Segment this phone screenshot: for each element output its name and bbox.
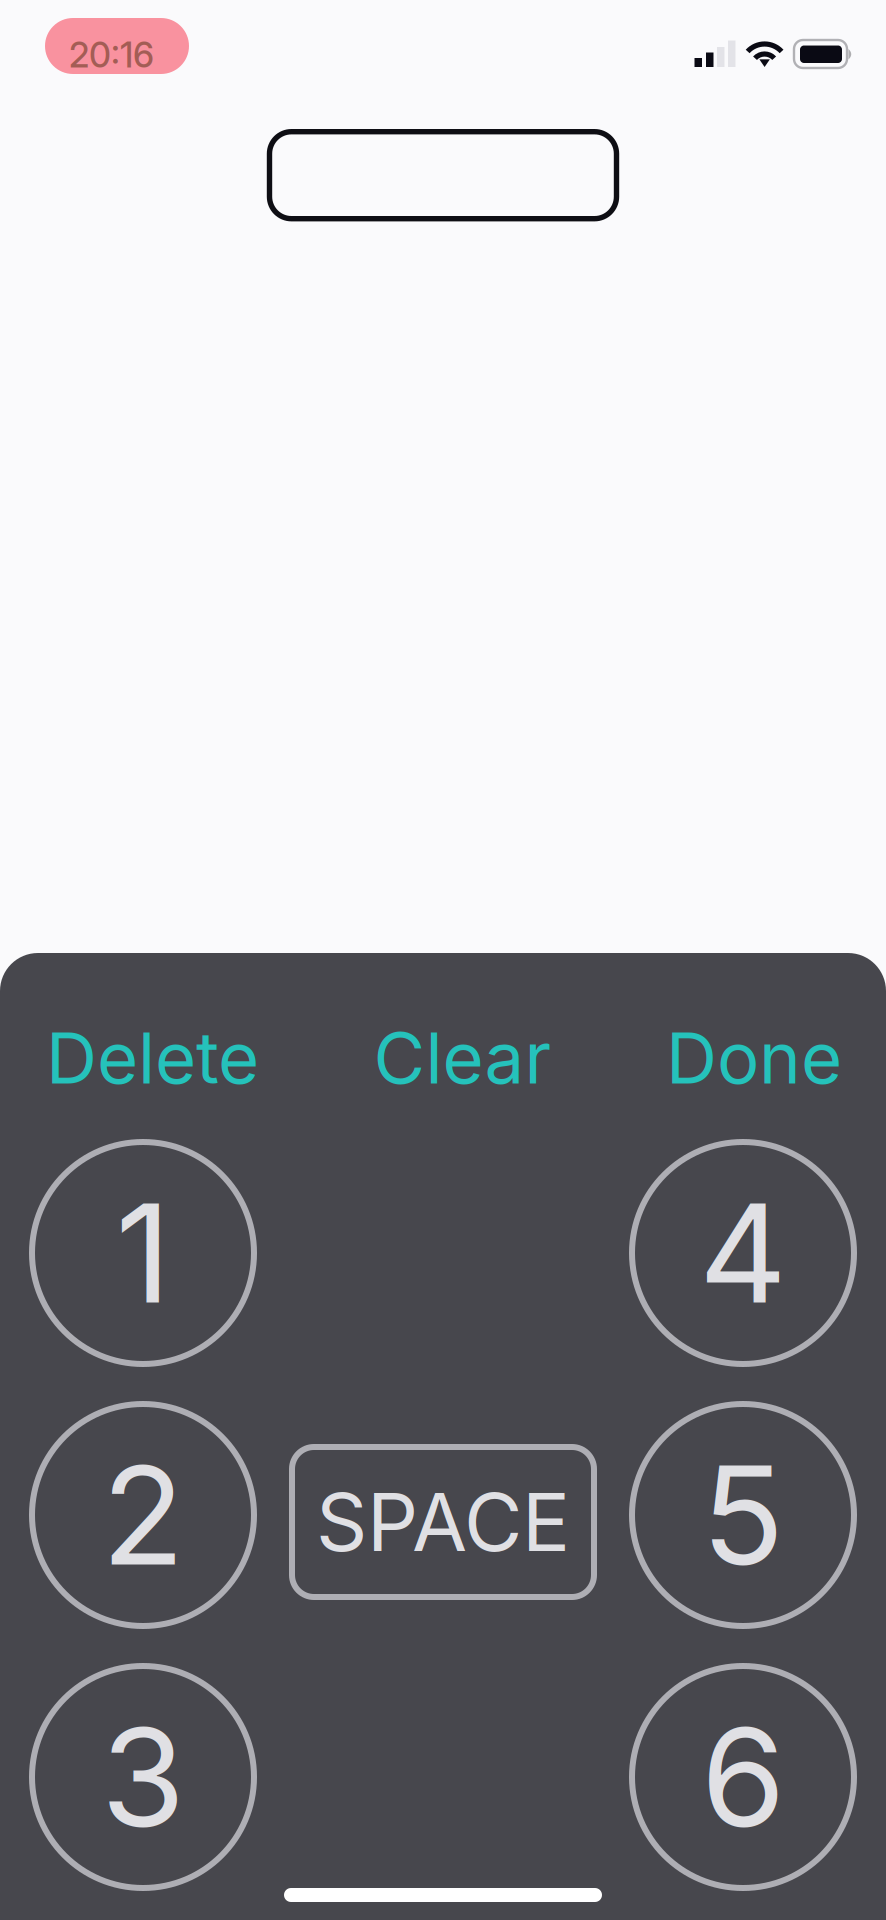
staticText: Delete bbox=[46, 1015, 259, 1100]
button[interactable]: SPACE bbox=[292, 1447, 594, 1597]
staticText: SPACE bbox=[316, 1474, 570, 1570]
staticText: 2 bbox=[101, 1433, 184, 1597]
button[interactable]: Done bbox=[666, 1015, 842, 1100]
staticText: Done bbox=[666, 1015, 842, 1100]
staticText: 1 bbox=[115, 1171, 170, 1335]
button[interactable]: Clear bbox=[373, 1015, 551, 1100]
staticText: 3 bbox=[101, 1695, 185, 1859]
button[interactable]: 1 bbox=[32, 1142, 254, 1364]
button[interactable]: Delete bbox=[46, 1015, 259, 1100]
button[interactable]: 5 bbox=[632, 1404, 854, 1626]
staticText: 20:16 bbox=[69, 34, 154, 76]
button[interactable]: 2 bbox=[32, 1404, 254, 1626]
staticText: Clear bbox=[373, 1015, 551, 1100]
staticText: 4 bbox=[699, 1171, 787, 1335]
staticText: 5 bbox=[701, 1433, 784, 1597]
button[interactable]: 4 bbox=[632, 1142, 854, 1364]
button[interactable]: 6 bbox=[632, 1666, 854, 1888]
button[interactable]: Text field bbox=[269, 132, 616, 219]
staticText: 6 bbox=[701, 1695, 785, 1859]
button[interactable]: 3 bbox=[32, 1666, 254, 1888]
